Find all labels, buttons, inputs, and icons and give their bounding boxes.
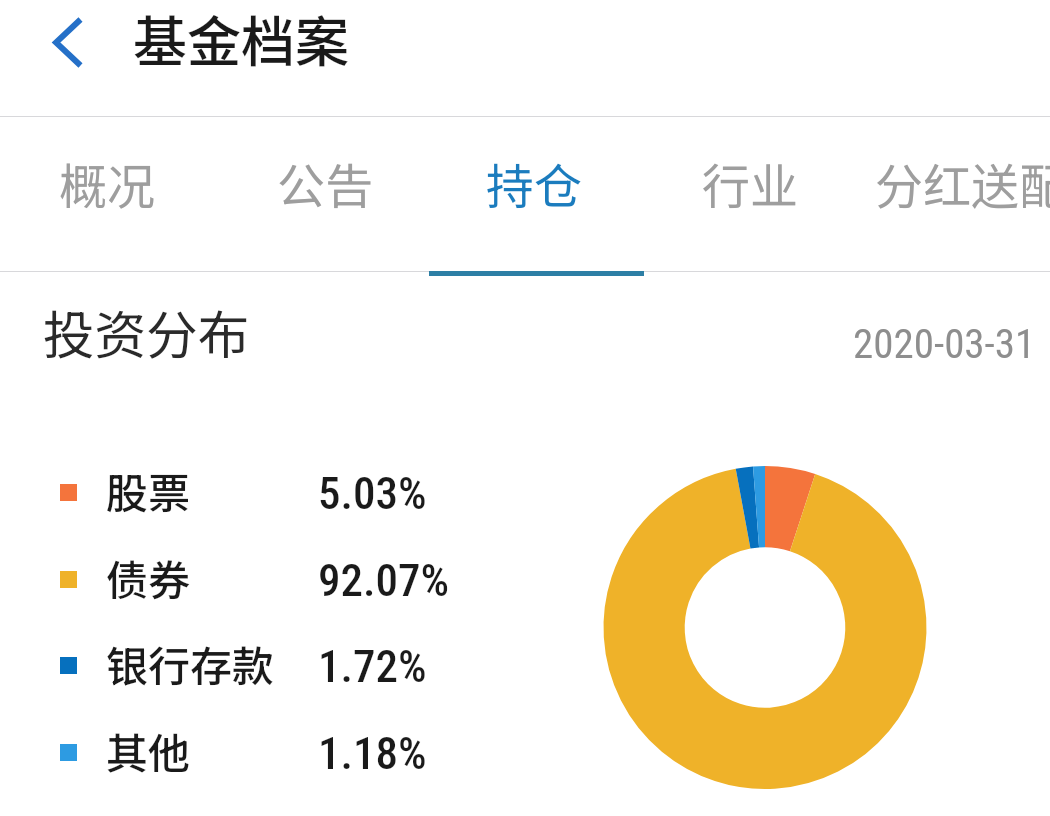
staticText: 行业 <box>702 148 799 218</box>
staticText: 1.72% <box>318 640 427 693</box>
staticText: 2020-03-31 <box>853 320 1036 368</box>
staticText: 债券 <box>106 547 191 608</box>
staticText: 其他 <box>106 720 191 781</box>
button[interactable]: 行业 <box>701 117 805 271</box>
button[interactable]: 债券 <box>0 541 520 613</box>
staticText: 股票 <box>106 460 191 521</box>
button[interactable]: 股票 <box>0 454 520 526</box>
button[interactable]: 公告 <box>276 117 380 271</box>
button[interactable]: 其他 <box>0 714 520 786</box>
staticText: 5.03% <box>318 467 427 520</box>
staticText: 92.07% <box>318 554 450 607</box>
staticText: 持仓 <box>486 148 583 218</box>
staticText: 投资分布 <box>43 294 250 369</box>
other: Asset allocation pie chart <box>0 0 1050 816</box>
staticText: 银行存款 <box>106 633 275 694</box>
staticText: 分红送配 <box>875 148 1050 218</box>
button[interactable]: 银行存款 <box>0 627 520 699</box>
button[interactable]: 概况 <box>58 117 162 271</box>
staticText: 1.18% <box>318 727 427 780</box>
button[interactable]: 持仓 <box>485 117 589 271</box>
button[interactable]: 分红送配 <box>874 117 1050 271</box>
staticText: 基金档案 <box>133 0 349 77</box>
button[interactable]: Back <box>39 7 99 67</box>
staticText: 公告 <box>277 148 374 218</box>
staticText: 概况 <box>59 148 156 218</box>
